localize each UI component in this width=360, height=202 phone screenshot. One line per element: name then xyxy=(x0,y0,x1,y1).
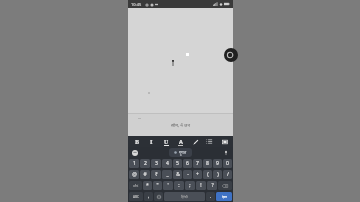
button[interactable]: हिन्दी xyxy=(164,192,205,201)
staticText: 1 xyxy=(133,160,136,167)
staticText: " xyxy=(156,182,159,189)
button[interactable]: 9 xyxy=(213,159,222,168)
staticText: ) xyxy=(217,171,219,178)
staticText: 5 xyxy=(176,160,179,167)
button[interactable]: Bold xyxy=(132,136,143,147)
button[interactable]: ₹ xyxy=(151,170,161,179)
button[interactable]: " xyxy=(153,181,162,190)
button[interactable]: ( xyxy=(203,170,212,179)
button[interactable]: 3 xyxy=(151,159,161,168)
staticText: _ xyxy=(166,171,169,178)
staticText: 10:45 xyxy=(131,2,142,7)
staticText: + xyxy=(196,171,199,178)
button[interactable]: Highlight xyxy=(190,136,201,147)
staticText: गूगल xyxy=(179,150,187,155)
button[interactable]: # xyxy=(140,170,150,179)
staticText: @ xyxy=(132,171,137,178)
button[interactable]: गूगल xyxy=(174,150,187,155)
staticText: U xyxy=(164,138,169,145)
button[interactable]: 8 xyxy=(203,159,212,168)
button[interactable]: 1 xyxy=(129,159,139,168)
button[interactable]: . xyxy=(206,192,215,201)
button[interactable]: * xyxy=(143,181,152,190)
button[interactable]: @ xyxy=(129,170,139,179)
button[interactable]: =\< xyxy=(129,181,142,190)
button[interactable]: - xyxy=(183,170,192,179)
staticText: 4 xyxy=(166,160,169,167)
button[interactable]: List xyxy=(204,136,215,147)
button[interactable]: 4 xyxy=(162,159,172,168)
button[interactable]: : xyxy=(174,181,184,190)
staticText: =\< xyxy=(133,183,139,188)
staticText: ! xyxy=(200,182,202,189)
button[interactable]: 5 xyxy=(173,159,182,168)
staticText: ' xyxy=(167,182,169,189)
staticText: A xyxy=(179,138,183,145)
staticText: I xyxy=(150,138,153,146)
staticText: , xyxy=(148,193,150,200)
staticText: * xyxy=(146,182,149,189)
staticText: - xyxy=(187,171,189,178)
button[interactable]: 0 xyxy=(223,159,232,168)
staticText: 7 xyxy=(196,160,199,167)
button[interactable]: ; xyxy=(185,181,195,190)
button[interactable]: Text color xyxy=(175,136,186,147)
button[interactable]: Emoji xyxy=(132,150,138,156)
button[interactable]: Backspace xyxy=(218,181,232,190)
staticText: B xyxy=(135,138,140,146)
button[interactable]: ABC xyxy=(129,192,143,201)
staticText: 3 xyxy=(155,160,158,167)
button[interactable]: , xyxy=(144,192,153,201)
staticText: 9 xyxy=(216,160,219,167)
button[interactable]: ) xyxy=(213,170,222,179)
staticText: ? xyxy=(211,182,214,189)
button[interactable]: Switch language xyxy=(154,192,163,201)
button[interactable]: ? xyxy=(207,181,217,190)
staticText: ; xyxy=(189,182,191,189)
staticText: 6 xyxy=(186,160,189,167)
staticText: . xyxy=(210,193,212,200)
button[interactable]: Underline xyxy=(161,136,172,147)
button[interactable]: Insert xyxy=(219,136,230,147)
staticText: : xyxy=(178,182,180,189)
staticText: 8 xyxy=(206,160,209,167)
staticText: # xyxy=(143,171,147,178)
button[interactable]: Voice input xyxy=(223,150,229,156)
staticText: / xyxy=(227,171,229,178)
staticText: & xyxy=(176,171,180,178)
button[interactable]: Enter xyxy=(216,192,232,201)
button[interactable]: Record xyxy=(224,48,238,62)
button[interactable]: + xyxy=(193,170,202,179)
button[interactable]: ' xyxy=(163,181,173,190)
staticText: एंटर xyxy=(222,195,227,199)
staticText: 2 xyxy=(144,160,147,167)
button[interactable]: / xyxy=(223,170,232,179)
button[interactable]: 7 xyxy=(193,159,202,168)
button[interactable]: & xyxy=(173,170,182,179)
staticText: सोम, 4 जन xyxy=(171,122,190,128)
staticText: ₹ xyxy=(155,171,158,178)
button[interactable]: 2 xyxy=(140,159,150,168)
staticText: 0 xyxy=(226,160,229,167)
staticText: ABC xyxy=(133,195,140,199)
staticText: ( xyxy=(207,171,209,178)
button[interactable]: 6 xyxy=(183,159,192,168)
button[interactable]: Italic xyxy=(146,136,157,147)
button[interactable]: _ xyxy=(162,170,172,179)
staticText: हिन्दी xyxy=(181,194,188,199)
button[interactable]: ! xyxy=(196,181,206,190)
